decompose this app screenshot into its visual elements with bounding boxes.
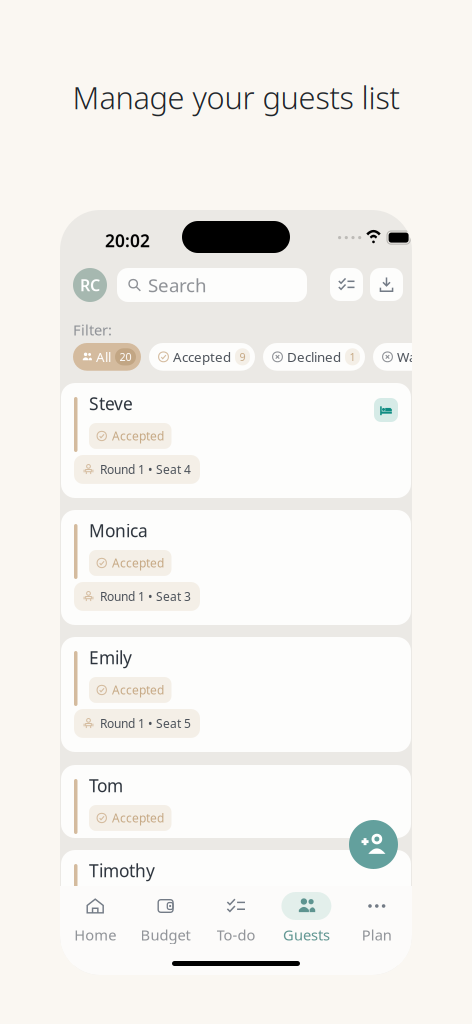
staticText: Accepted <box>112 555 164 571</box>
button[interactable]: Home <box>60 892 130 944</box>
staticText: Manage your guests list <box>72 77 399 118</box>
staticText: 20:02 <box>105 229 150 252</box>
button[interactable]: Export <box>370 268 403 301</box>
staticText: Budget <box>141 925 191 944</box>
staticText: Accepted <box>173 348 231 366</box>
button[interactable]: Emily <box>61 637 411 752</box>
staticText: Round 1 • Seat 3 <box>100 588 191 604</box>
button[interactable]: Add guest <box>349 820 398 869</box>
staticText: All <box>96 348 111 366</box>
staticText: RC <box>80 274 100 296</box>
staticText: Accepted <box>112 428 164 444</box>
staticText: Emily <box>89 646 132 669</box>
button[interactable]: Accepted <box>149 343 255 371</box>
button[interactable]: Steve <box>61 383 411 498</box>
staticText: Monica <box>89 519 148 542</box>
button[interactable]: Budget <box>130 892 201 944</box>
staticText: Accepted <box>112 682 164 698</box>
button[interactable]: Wai <box>373 343 428 371</box>
staticText: Round 1 • Seat 2 <box>100 928 191 944</box>
button[interactable]: Declined <box>263 343 365 371</box>
button[interactable]: Plan <box>342 892 412 944</box>
staticText: Guests <box>283 925 330 944</box>
staticText: 1 <box>349 350 355 364</box>
button[interactable]: Timothy <box>61 850 411 965</box>
button[interactable]: Guests <box>271 892 342 944</box>
staticText: Search <box>148 273 207 297</box>
button[interactable]: Monica <box>61 510 411 625</box>
staticText: Timothy <box>89 859 155 882</box>
staticText: Round 1 • Seat 4 <box>100 461 191 477</box>
staticText: 20 <box>119 350 131 364</box>
staticText: Tom <box>89 774 123 797</box>
staticText: Plan <box>362 925 392 944</box>
staticText: Steve <box>89 392 133 415</box>
button[interactable]: Tom <box>61 765 411 838</box>
staticText: To-do <box>216 925 255 944</box>
button[interactable]: To-do <box>201 892 271 944</box>
staticText: Round 1 • Seat 5 <box>100 715 191 731</box>
staticText: Wai <box>397 348 419 366</box>
button[interactable]: All <box>73 343 141 371</box>
staticText: Home <box>74 925 116 944</box>
button[interactable]: Checklist <box>330 268 363 301</box>
staticText: 9 <box>239 350 245 364</box>
staticText: Accepted <box>112 895 164 911</box>
staticText: Declined <box>287 348 341 366</box>
staticText: Accepted <box>112 810 164 826</box>
staticText: Filter: <box>73 320 112 339</box>
